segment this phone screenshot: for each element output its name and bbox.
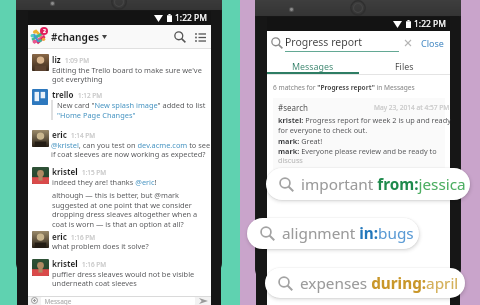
staticText: although — this is better, but @mark (52, 190, 180, 200)
staticText: kristel (52, 166, 78, 177)
staticText: 1:09 PM (65, 56, 90, 65)
staticText: 1:16 PM (71, 233, 96, 242)
staticText: Message (41, 297, 72, 305)
staticText: kristel (52, 258, 78, 269)
button[interactable]: 2 (28, 25, 211, 48)
button[interactable]: Clear search (401, 36, 414, 49)
staticText: dropping dress sleaves altogether when a (52, 209, 198, 219)
staticText: mark: Great! (278, 136, 323, 146)
staticText: trello (52, 89, 74, 100)
staticText: discuss (278, 155, 303, 165)
staticText: May 23, 2014 at 4:57 PM (374, 103, 450, 112)
staticText: eric (52, 231, 67, 242)
staticText: 2 (43, 28, 46, 35)
staticText: #search (278, 102, 308, 113)
button[interactable]: Channel members (190, 27, 210, 47)
staticText: eric (52, 129, 67, 140)
staticText: important from:jessica (301, 174, 466, 195)
staticText: got everything (52, 74, 103, 84)
staticText: indeed they are! thanks @eric! (52, 177, 157, 187)
staticText: 1:22 PM (175, 12, 207, 24)
button[interactable]: Message (28, 296, 211, 305)
staticText: for everyone to check out. (278, 125, 368, 135)
staticText: liz (52, 54, 61, 65)
staticText: Files (395, 60, 414, 72)
staticText: New card "New splash image" added to lis… (57, 100, 206, 110)
button[interactable]: Close (419, 35, 446, 51)
staticText: coat is worn — is that an option at all? (52, 219, 184, 229)
button[interactable]: Search (170, 27, 190, 47)
staticText: 1:15 PM (82, 168, 107, 177)
staticText: underneath coat sleeves (52, 278, 137, 288)
staticText: @kristel, can you test on dev.acme.com t… (51, 140, 211, 150)
staticText: suggested at one point that we consider (52, 200, 192, 210)
staticText: Close (421, 37, 444, 49)
staticText: if coat sleeves are now working as expec… (51, 149, 206, 159)
staticText: "Home Page Changes" (57, 110, 136, 120)
staticText: 1:12 PM (78, 91, 103, 100)
button[interactable]: Files (358, 58, 450, 74)
staticText: kristel: Progress report for week 2 is u… (278, 115, 451, 125)
staticText: expenses during:april (300, 273, 459, 294)
staticText: 1:16 PM (82, 260, 107, 269)
staticText: Progress report (285, 35, 363, 49)
staticText: Editing the Trello board to make sure we… (52, 65, 202, 75)
button[interactable]: expenses during:april (265, 268, 465, 298)
staticText: #changes (51, 30, 99, 44)
staticText: Messages (292, 60, 334, 72)
staticText: puffier dress sleaves would not be visib… (52, 269, 195, 279)
staticText: mark: Everyone please review and be read… (278, 146, 437, 156)
button[interactable]: alignment in:bugs (247, 218, 419, 249)
button[interactable]: Progress report (267, 31, 450, 58)
staticText: 1:22 PM (414, 18, 446, 30)
staticText: 6 matches for "Progress report" in Messa… (273, 83, 415, 92)
button[interactable] (273, 98, 445, 196)
button[interactable]: important from:jessica (266, 168, 470, 200)
staticText: alignment in:bugs (282, 223, 414, 244)
button[interactable]: Messages (267, 58, 358, 74)
staticText: what problem does it solve? (52, 241, 149, 251)
staticText: 1:14 PM (71, 131, 96, 140)
